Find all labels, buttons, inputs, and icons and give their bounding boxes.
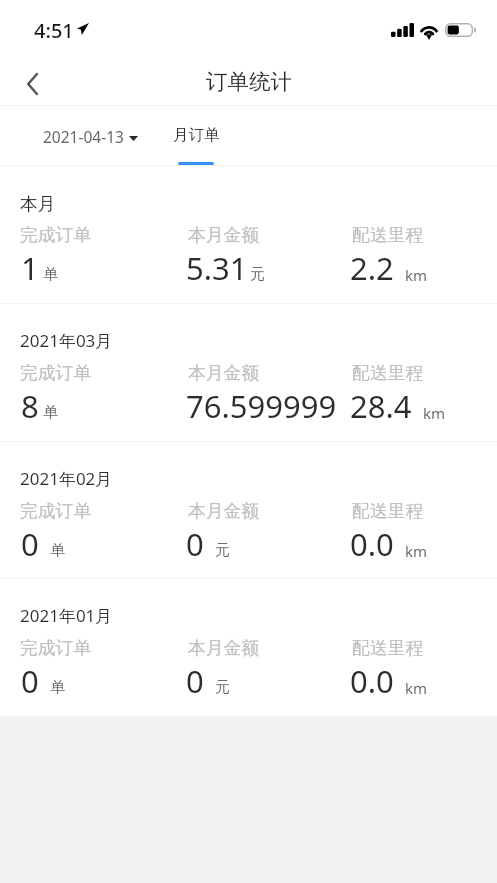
staticText: 配送里程 (352, 362, 424, 384)
staticText: km (405, 541, 428, 561)
button[interactable]: Back (0, 55, 58, 105)
staticText: 完成订单 (20, 362, 92, 384)
staticText: 0 (186, 660, 204, 702)
staticText: 本月 (20, 193, 55, 215)
button[interactable]: 2021年03月 (0, 304, 497, 441)
button[interactable]: 月订单 (158, 106, 234, 165)
staticText: 2021-04-13 (43, 126, 124, 147)
staticText: 配送里程 (352, 224, 424, 246)
button[interactable]: 本月 (0, 166, 497, 303)
staticText: 完成订单 (20, 500, 92, 522)
staticText: 0 (21, 523, 39, 565)
staticText: 0 (186, 523, 204, 565)
staticText: 4:51 (34, 17, 74, 44)
button[interactable]: 2021年01月 (0, 579, 497, 716)
staticText: 月订单 (173, 125, 220, 145)
staticText: 2.2 (350, 247, 394, 289)
staticText: 元 (215, 678, 230, 697)
staticText: 5.31 (186, 247, 248, 289)
staticText: 8 (21, 385, 39, 427)
staticText: 76.599999 (186, 385, 337, 427)
staticText: 完成订单 (20, 224, 92, 246)
button[interactable]: 2021-04-13 (43, 106, 138, 165)
staticText: 0.0 (350, 523, 394, 565)
staticText: 完成订单 (20, 637, 92, 659)
staticText: km (405, 678, 428, 698)
staticText: 28.4 (350, 385, 412, 427)
staticText: 元 (215, 541, 230, 560)
staticText: 2021年03月 (20, 329, 113, 352)
staticText: km (405, 265, 428, 285)
staticText: 本月金额 (188, 637, 260, 659)
staticText: 配送里程 (352, 500, 424, 522)
staticText: km (423, 403, 446, 423)
staticText: 订单统计 (206, 68, 292, 95)
staticText: 0.0 (350, 660, 394, 702)
staticText: 本月金额 (188, 362, 260, 384)
staticText: 单 (43, 403, 58, 422)
staticText: 单 (43, 265, 58, 284)
staticText: 本月金额 (188, 224, 260, 246)
staticText: 配送里程 (352, 637, 424, 659)
staticText: 2021年01月 (20, 604, 113, 627)
staticText: 元 (250, 265, 265, 284)
staticText: 单 (50, 678, 65, 697)
staticText: 本月金额 (188, 500, 260, 522)
staticText: 单 (50, 541, 65, 560)
staticText: 2021年02月 (20, 467, 113, 490)
button[interactable]: 2021年02月 (0, 442, 497, 578)
staticText: 0 (21, 660, 39, 702)
staticText: 1 (21, 247, 39, 289)
